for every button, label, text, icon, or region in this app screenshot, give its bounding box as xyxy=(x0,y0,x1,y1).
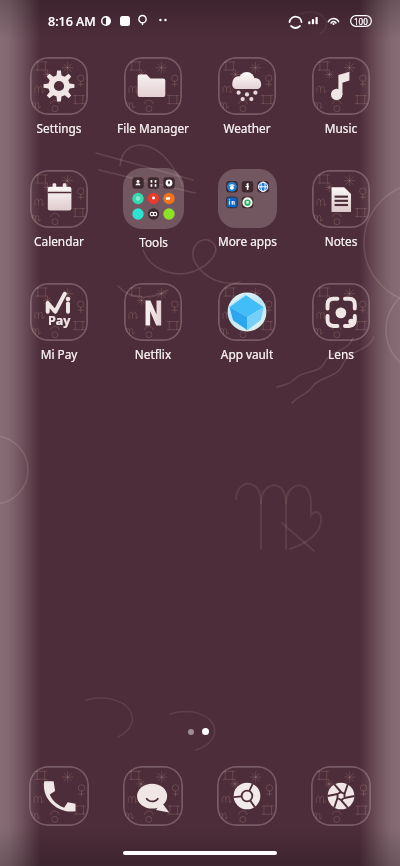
button[interactable]: File Manager xyxy=(111,57,195,136)
button[interactable]: Messages xyxy=(123,766,183,826)
button[interactable]: Pay xyxy=(17,283,101,362)
button[interactable]: Music xyxy=(299,57,383,136)
staticText: Lens xyxy=(299,346,383,362)
staticText: Tools xyxy=(112,234,195,250)
staticText: 100 xyxy=(354,16,368,27)
staticText: Weather xyxy=(205,120,289,136)
button[interactable]: Netflix xyxy=(111,283,195,362)
button[interactable]: Lens xyxy=(299,283,383,362)
staticText: Netflix xyxy=(111,346,195,362)
staticText: App vault xyxy=(205,346,289,362)
button[interactable]: Calendar xyxy=(17,170,101,249)
staticText: Pay xyxy=(48,312,71,329)
button[interactable]: Weather xyxy=(205,57,289,136)
button[interactable]: Camera xyxy=(311,766,371,826)
staticText: Settings xyxy=(17,120,101,136)
staticText: Notes xyxy=(299,233,383,249)
staticText: Mi Pay xyxy=(17,346,101,362)
staticText: Calendar xyxy=(17,233,101,249)
button[interactable]: More apps xyxy=(206,169,289,249)
button[interactable]: Notes xyxy=(299,170,383,249)
staticText: More apps xyxy=(206,233,289,249)
staticText: File Manager xyxy=(111,120,195,136)
staticText: Music xyxy=(299,120,383,136)
button[interactable]: Chrome xyxy=(217,766,277,826)
button[interactable]: Phone xyxy=(29,766,89,826)
button[interactable]: App vault xyxy=(205,283,289,362)
button[interactable]: Tools xyxy=(112,168,195,250)
button[interactable]: Settings xyxy=(17,57,101,136)
staticText: 8:16 AM xyxy=(48,13,96,30)
